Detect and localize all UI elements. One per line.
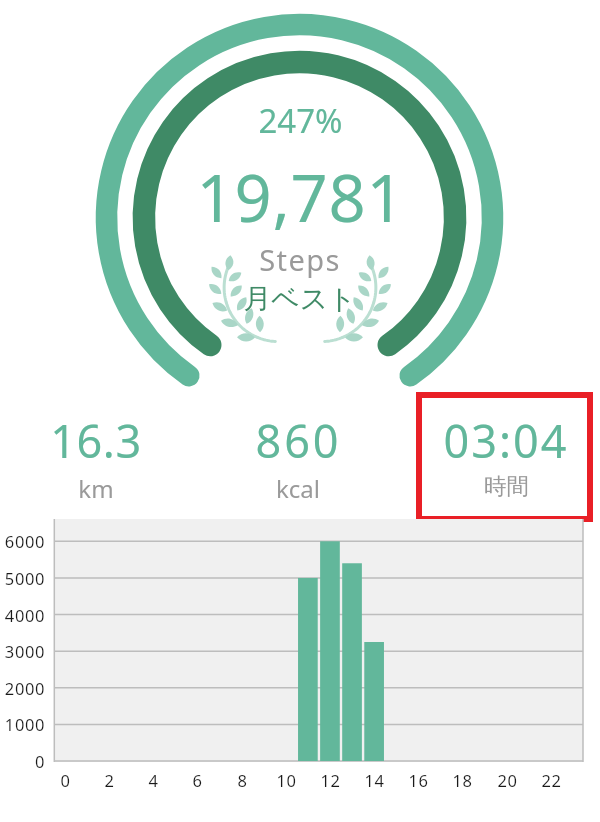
button[interactable]: 03:04	[406, 410, 600, 500]
staticText: 16	[408, 769, 429, 791]
staticText: km	[78, 472, 114, 505]
staticText: 6	[192, 769, 203, 791]
staticText: 1000	[4, 713, 45, 735]
staticText: 18	[452, 769, 473, 791]
staticText: 0	[60, 769, 71, 791]
staticText: 月ベスト	[243, 281, 357, 316]
staticText: Steps	[259, 240, 341, 279]
staticText: 03:04	[443, 410, 569, 471]
staticText: 12	[320, 769, 341, 791]
staticText: 2000	[4, 677, 45, 699]
staticText: 19,781	[196, 153, 405, 242]
staticText: 22	[541, 769, 562, 791]
staticText: 2	[104, 769, 115, 791]
staticText: 14	[364, 769, 385, 791]
staticText: 10	[276, 769, 297, 791]
staticText: 4000	[4, 604, 45, 626]
staticText: 6000	[4, 530, 45, 552]
staticText: 3000	[4, 640, 45, 662]
staticText: 5000	[4, 567, 45, 589]
staticText: 16.3	[50, 410, 142, 471]
button[interactable]: 860	[198, 410, 398, 505]
staticText: kcal	[276, 472, 320, 505]
staticText: 8	[237, 769, 248, 791]
staticText: 20	[497, 769, 518, 791]
staticText: 4	[148, 769, 159, 791]
staticText: 0	[34, 750, 45, 772]
button[interactable]: 16.3	[0, 410, 196, 505]
staticText: 247%	[258, 98, 343, 143]
staticText: 時間	[484, 472, 529, 500]
staticText: 860	[255, 410, 342, 471]
